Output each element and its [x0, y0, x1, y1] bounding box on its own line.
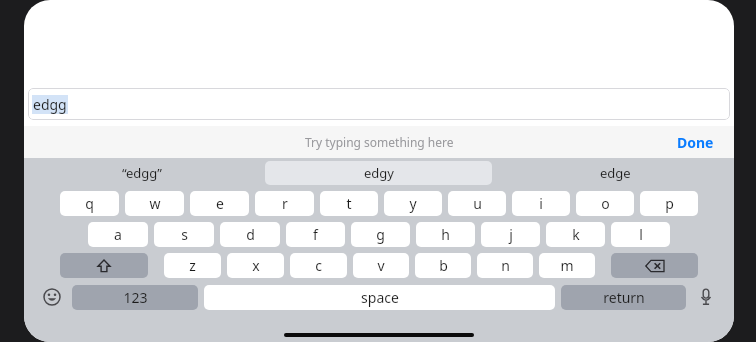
staticText: Done: [677, 133, 714, 152]
staticText: t: [346, 194, 352, 213]
button[interactable]: z: [164, 253, 221, 278]
button[interactable]: b: [415, 253, 471, 278]
button[interactable]: o: [576, 191, 634, 216]
button[interactable]: c: [290, 253, 347, 278]
button[interactable]: q: [60, 191, 119, 216]
staticText: u: [473, 194, 482, 213]
button[interactable]: “edgg”: [29, 161, 255, 185]
staticText: y: [409, 194, 417, 213]
button[interactable]: e: [190, 191, 249, 216]
staticText: “edgg”: [122, 164, 162, 182]
staticText: o: [601, 194, 610, 213]
button[interactable]: Emoji: [32, 284, 72, 310]
staticText: return: [603, 288, 645, 307]
button[interactable]: u: [448, 191, 506, 216]
staticText: s: [181, 225, 188, 244]
button[interactable]: edgy: [265, 161, 492, 185]
staticText: c: [315, 256, 322, 275]
staticText: m: [560, 256, 574, 275]
staticText: w: [149, 194, 161, 213]
staticText: d: [246, 225, 255, 244]
staticText: edge: [600, 164, 631, 182]
staticText: r: [282, 194, 288, 213]
button[interactable]: l: [611, 222, 670, 247]
staticText: space: [361, 288, 399, 307]
button[interactable]: v: [353, 253, 409, 278]
staticText: Try typing something here: [305, 134, 454, 150]
staticText: q: [85, 194, 94, 213]
button[interactable]: space: [204, 285, 555, 310]
button[interactable]: s: [154, 222, 214, 247]
staticText: j: [509, 225, 513, 244]
staticText: x: [252, 256, 260, 275]
staticText: edgy: [364, 164, 394, 182]
button[interactable]: Dictate: [686, 284, 726, 310]
button[interactable]: k: [546, 222, 605, 247]
staticText: p: [665, 194, 674, 213]
button[interactable]: a: [88, 222, 148, 247]
staticText: e: [216, 194, 224, 213]
button[interactable]: y: [384, 191, 442, 216]
button[interactable]: p: [640, 191, 698, 216]
button[interactable]: f: [286, 222, 345, 247]
button[interactable]: 123: [72, 285, 198, 310]
staticText: 123: [123, 288, 148, 307]
staticText: i: [539, 194, 543, 213]
staticText: edgg: [33, 95, 67, 114]
button[interactable]: m: [539, 253, 595, 278]
button[interactable]: Shift: [60, 253, 148, 278]
staticText: g: [376, 225, 385, 244]
button[interactable]: r: [255, 191, 314, 216]
button[interactable]: h: [416, 222, 475, 247]
staticText: h: [441, 225, 450, 244]
staticText: z: [189, 256, 196, 275]
button[interactable]: g: [351, 222, 410, 247]
staticText: v: [377, 256, 385, 275]
button[interactable]: edgg: [28, 88, 730, 120]
staticText: l: [639, 225, 643, 244]
button[interactable]: edge: [502, 161, 729, 185]
button[interactable]: Done: [671, 130, 720, 155]
button[interactable]: Delete: [611, 253, 698, 278]
button[interactable]: n: [477, 253, 533, 278]
staticText: b: [439, 256, 448, 275]
staticText: f: [313, 225, 318, 244]
staticText: a: [114, 225, 122, 244]
staticText: n: [501, 256, 510, 275]
button[interactable]: x: [227, 253, 284, 278]
button[interactable]: return: [561, 285, 686, 310]
button[interactable]: w: [125, 191, 184, 216]
button[interactable]: t: [320, 191, 378, 216]
button[interactable]: d: [220, 222, 280, 247]
staticText: k: [572, 225, 580, 244]
button[interactable]: j: [481, 222, 540, 247]
button[interactable]: i: [512, 191, 570, 216]
